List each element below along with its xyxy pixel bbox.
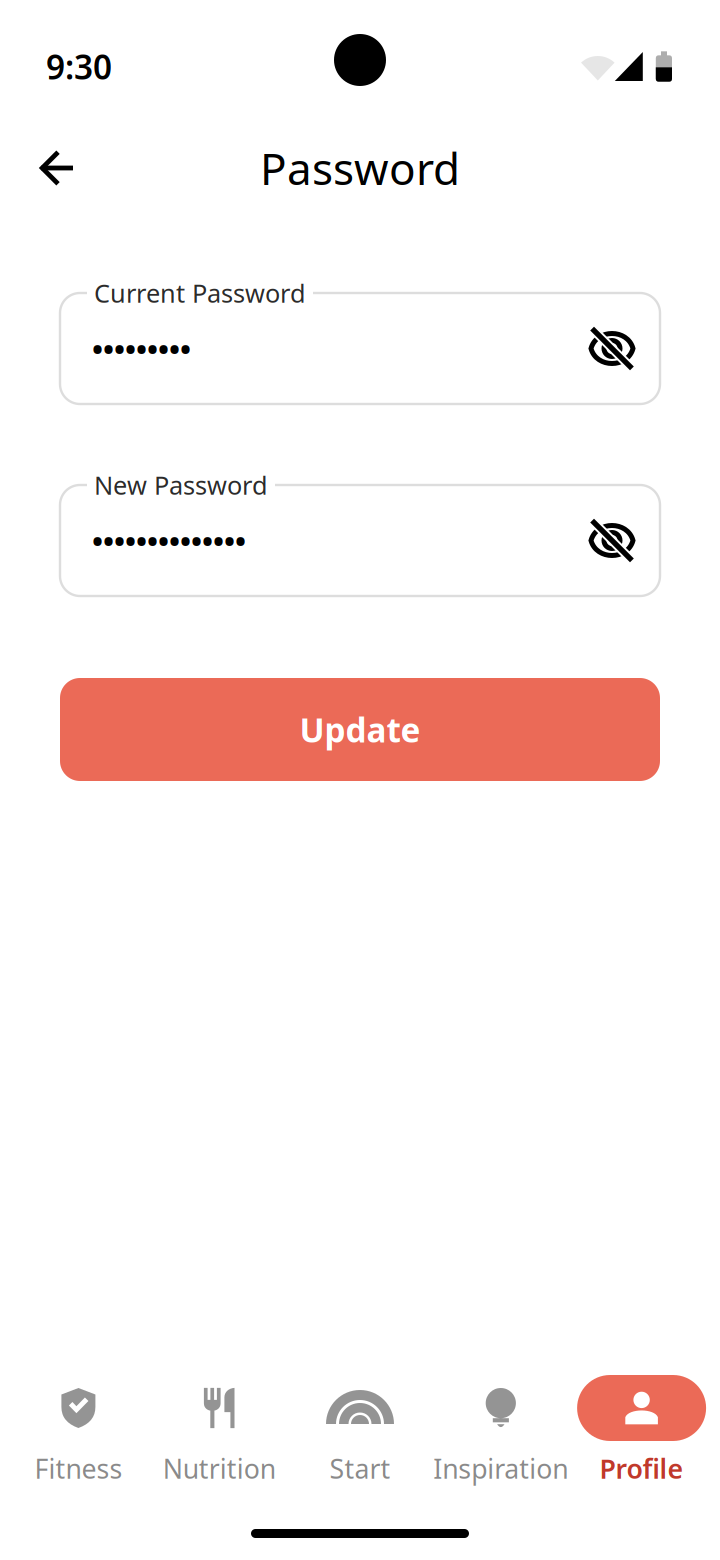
staticText: Start: [329, 1451, 390, 1486]
staticText: •••••••••: [92, 329, 191, 368]
button[interactable]: Start: [290, 1375, 430, 1486]
staticText: New Password: [94, 468, 268, 502]
button[interactable]: Profile: [571, 1375, 712, 1486]
button[interactable]: Show password: [584, 320, 640, 376]
button[interactable]: Inspiration: [430, 1375, 571, 1486]
staticText: Inspiration: [433, 1451, 568, 1486]
staticText: 9:30: [46, 44, 112, 89]
staticText: Nutrition: [163, 1451, 276, 1486]
button[interactable]: Fitness: [8, 1375, 149, 1486]
staticText: ••••••••••••••: [92, 521, 246, 560]
button[interactable]: Show password: [584, 512, 640, 568]
staticText: Fitness: [34, 1451, 122, 1486]
staticText: Current Password: [94, 276, 306, 310]
button[interactable]: Update: [60, 678, 660, 781]
staticText: Update: [299, 707, 420, 752]
button[interactable]: Nutrition: [149, 1375, 290, 1486]
staticText: Password: [260, 139, 460, 197]
button[interactable]: Back: [22, 133, 92, 203]
staticText: Profile: [600, 1451, 684, 1486]
